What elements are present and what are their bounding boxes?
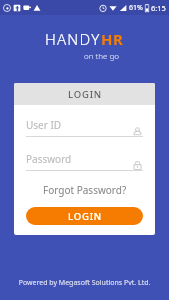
staticText: User ID [26,118,62,132]
staticText: on the go [84,50,120,61]
button[interactable]: Password [26,150,143,171]
button[interactable]: LOGIN [26,207,143,225]
other: Password [132,160,143,171]
staticText: LOGIN [68,88,102,101]
staticText: 6:15 [151,3,166,13]
button[interactable]: User ID [26,116,143,137]
staticText: 61% [129,3,143,13]
staticText: Password [26,152,72,166]
other: User [132,126,143,137]
staticText: Powered by Megasoft Solutions Pvt. Ltd. [0,278,169,288]
staticText: LOGIN [68,210,102,223]
staticText: Forgot Password? [43,183,127,197]
staticText: HANDY [45,29,101,49]
staticText: HR [101,29,124,49]
button[interactable]: Forgot Password? [26,183,143,197]
